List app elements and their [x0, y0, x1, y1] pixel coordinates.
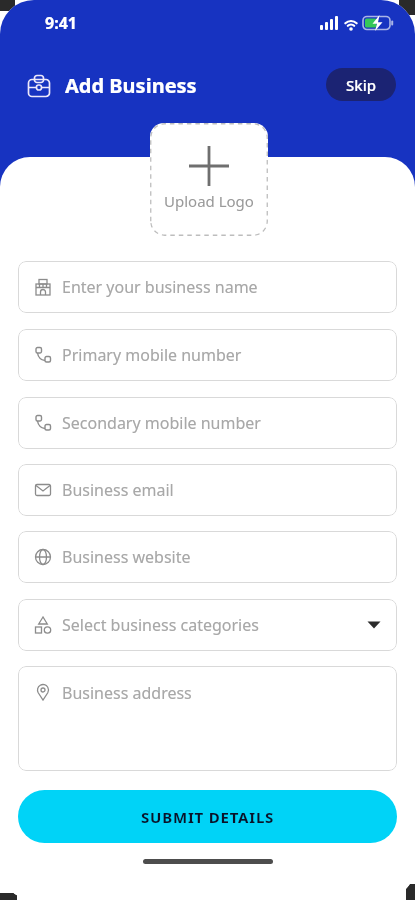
- button[interactable]: SUBMIT DETAILS: [18, 790, 397, 843]
- staticText: Secondary mobile number: [62, 412, 261, 434]
- staticText: Business email: [62, 479, 174, 501]
- staticText: 9:41: [45, 12, 77, 34]
- button[interactable]: Business website: [18, 531, 397, 583]
- button[interactable]: Select business categories: [18, 599, 397, 651]
- staticText: Add Business: [65, 72, 197, 99]
- staticText: Primary mobile number: [62, 344, 242, 366]
- button[interactable]: Business email: [18, 464, 397, 516]
- staticText: SUBMIT DETAILS: [141, 807, 275, 827]
- button[interactable]: Secondary mobile number: [18, 397, 397, 449]
- button[interactable]: Skip: [326, 68, 396, 101]
- button[interactable]: Business address: [18, 666, 397, 771]
- staticText: Business website: [62, 546, 191, 568]
- button[interactable]: Upload Logo: [150, 123, 268, 236]
- staticText: Select business categories: [62, 614, 259, 636]
- staticText: Skip: [346, 75, 376, 95]
- staticText: Business address: [62, 682, 192, 704]
- button[interactable]: Primary mobile number: [18, 329, 397, 381]
- staticText: Upload Logo: [164, 191, 254, 211]
- staticText: Enter your business name: [62, 276, 258, 298]
- button[interactable]: Enter your business name: [18, 261, 397, 313]
